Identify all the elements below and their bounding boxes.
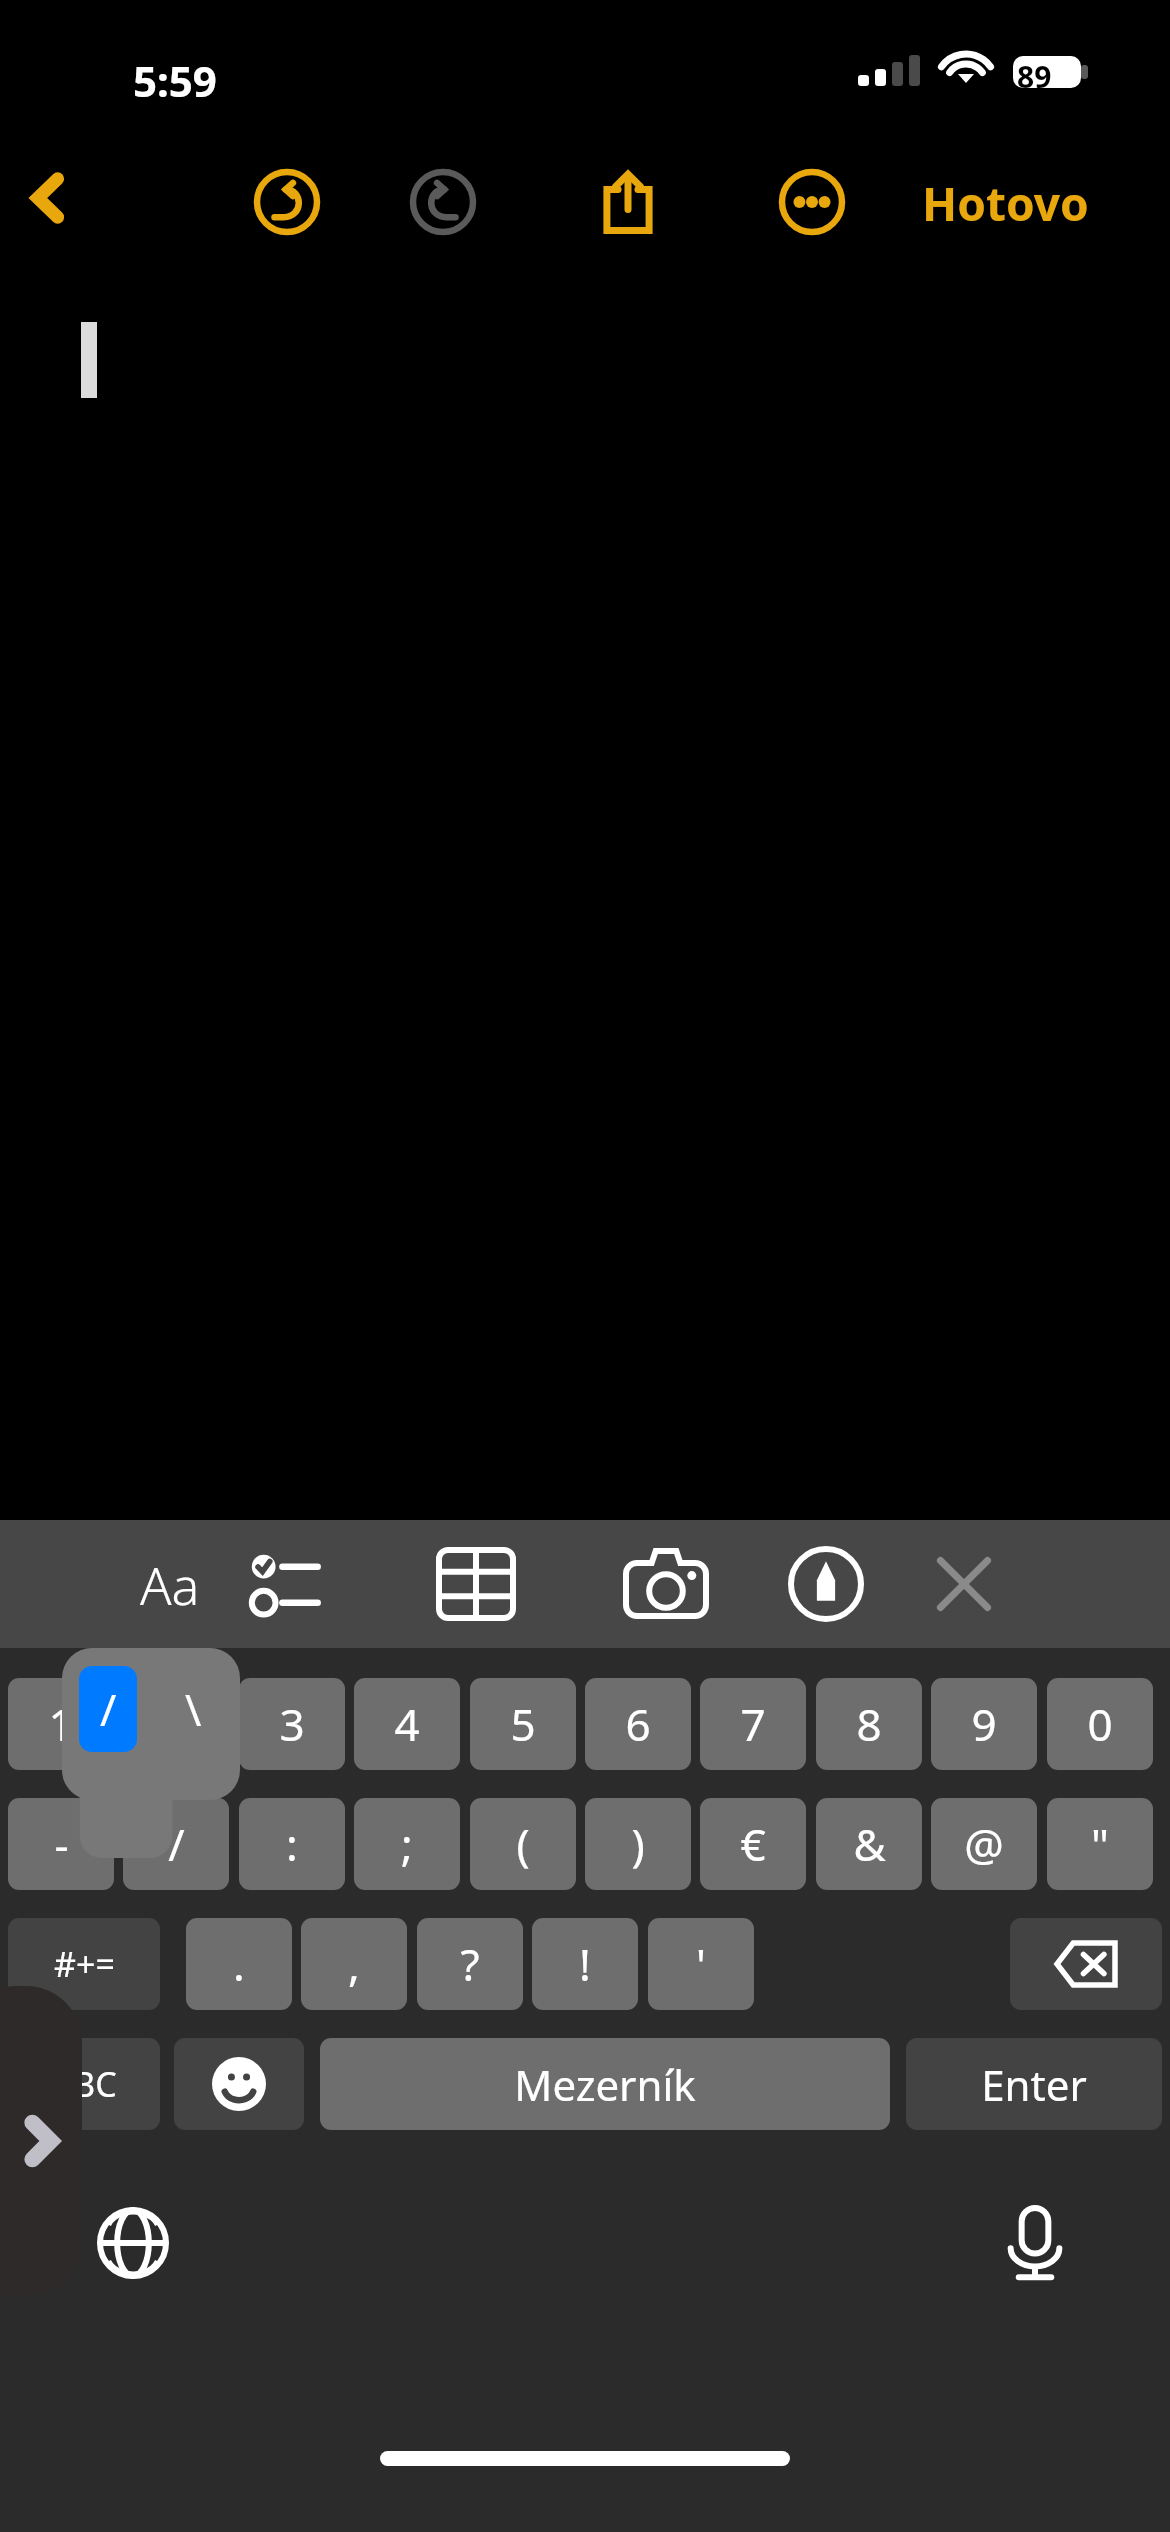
button[interactable]: ABC [8, 2038, 160, 2130]
staticText: 6 [625, 1694, 651, 1754]
button[interactable]: - [8, 1798, 114, 1890]
staticText: " [1091, 1814, 1109, 1874]
staticText: 4 [394, 1694, 420, 1754]
button[interactable]: € [700, 1798, 806, 1890]
staticText: 2 [163, 1694, 189, 1754]
staticText: : [286, 1814, 298, 1874]
button[interactable]: Back [0, 150, 96, 246]
button[interactable]: 2 [123, 1678, 229, 1770]
staticText: 7 [740, 1694, 766, 1754]
staticText: Hotovo [922, 172, 1089, 235]
staticText: / [168, 1814, 185, 1874]
staticText: Mezerník [514, 2056, 696, 2113]
button[interactable]: Markup [752, 1532, 900, 1636]
button[interactable]: Camera [592, 1532, 740, 1636]
button[interactable]: 6 [585, 1678, 691, 1770]
staticText: #+= [54, 1941, 115, 1987]
staticText: ABC [51, 2061, 117, 2107]
button[interactable]: . [186, 1918, 292, 2010]
staticText: 89 [1017, 56, 1052, 97]
staticText: - [54, 1814, 69, 1874]
button[interactable]: Emoji [174, 2038, 304, 2130]
button[interactable]: @ [931, 1798, 1037, 1890]
button[interactable]: & [816, 1798, 922, 1890]
button[interactable]: Close keyboard [890, 1532, 1038, 1636]
staticText: ( [516, 1814, 530, 1874]
staticText: 1 [48, 1694, 74, 1754]
button[interactable]: Enter [906, 2038, 1162, 2130]
button[interactable]: Hotovo [900, 158, 1111, 248]
staticText: . [233, 1934, 245, 1994]
button[interactable]: 3 [239, 1678, 345, 1770]
button[interactable]: Table [402, 1532, 550, 1636]
button[interactable]: 7 [700, 1678, 806, 1770]
button[interactable]: 0 [1047, 1678, 1153, 1770]
staticText: 8 [856, 1694, 882, 1754]
staticText: / [100, 1679, 117, 1739]
button[interactable]: ? [417, 1918, 523, 2010]
button[interactable]: ( [470, 1798, 576, 1890]
button[interactable]: 4 [354, 1678, 460, 1770]
button[interactable]: Backspace [1010, 1918, 1162, 2010]
staticText: , [348, 1934, 360, 1994]
button[interactable]: 1 [8, 1678, 114, 1770]
button[interactable]: Checklist [212, 1532, 360, 1636]
button[interactable]: Text format [96, 1532, 244, 1636]
button[interactable]: More [760, 150, 864, 254]
staticText: ; [401, 1814, 413, 1874]
staticText: Aa [140, 1549, 200, 1620]
button[interactable]: Share [576, 150, 680, 254]
button[interactable]: 9 [931, 1678, 1037, 1770]
button[interactable]: Undo [235, 150, 339, 254]
button[interactable]: : [239, 1798, 345, 1890]
staticText: 9 [971, 1694, 997, 1754]
button[interactable]: , [301, 1918, 407, 2010]
button[interactable]: ! [532, 1918, 638, 2010]
button[interactable]: Change keyboard [78, 2188, 188, 2298]
staticText: ' [696, 1934, 706, 1994]
button[interactable]: ) [585, 1798, 691, 1890]
staticText: 3 [279, 1694, 305, 1754]
staticText: @ [964, 1814, 1004, 1874]
button[interactable]: Redo [391, 150, 495, 254]
button[interactable]: Expand panel [0, 1986, 82, 2296]
staticText: 0 [1087, 1694, 1113, 1754]
staticText: 5:59 [133, 52, 217, 109]
button[interactable]: 8 [816, 1678, 922, 1770]
staticText: & [853, 1814, 886, 1874]
button[interactable]: 5 [470, 1678, 576, 1770]
button[interactable]: ' [648, 1918, 754, 2010]
staticText: 5 [510, 1694, 536, 1754]
staticText: ! [579, 1934, 591, 1994]
staticText: \ [185, 1679, 202, 1739]
staticText: € [740, 1814, 766, 1874]
button[interactable]: #+= [8, 1918, 160, 2010]
button[interactable]: " [1047, 1798, 1153, 1890]
button[interactable]: / [123, 1798, 229, 1890]
button[interactable]: ; [354, 1798, 460, 1890]
staticText: ) [631, 1814, 645, 1874]
staticText: ? [460, 1934, 480, 1994]
staticText: Enter [981, 2056, 1087, 2113]
button[interactable]: Mezerník [320, 2038, 890, 2130]
button[interactable]: Dictation [980, 2188, 1090, 2298]
